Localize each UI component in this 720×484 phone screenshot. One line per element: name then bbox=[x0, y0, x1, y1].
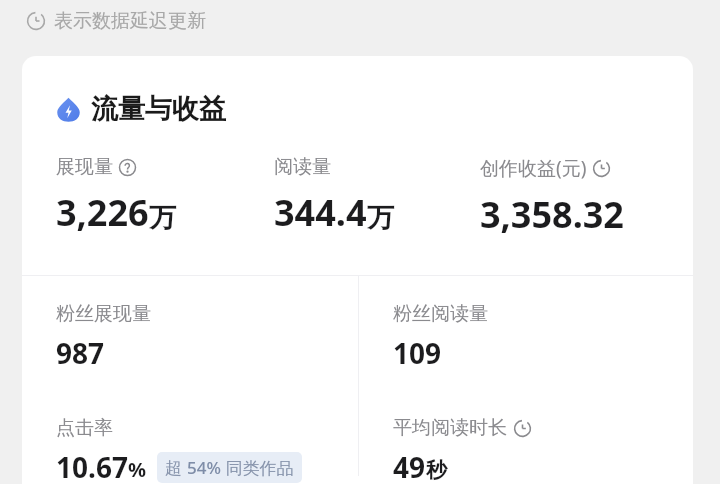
staticText: 987 bbox=[56, 334, 105, 372]
button[interactable]: 创作收益(元) bbox=[480, 155, 679, 239]
staticText: 展现量 bbox=[56, 155, 113, 179]
staticText: 表示数据延迟更新 bbox=[54, 9, 206, 33]
staticText: 万 bbox=[149, 201, 176, 235]
button[interactable]: 粉丝阅读量 bbox=[359, 276, 693, 484]
staticText: 54% bbox=[187, 456, 221, 479]
staticText: 平均阅读时长 bbox=[393, 416, 507, 440]
staticText: 49 bbox=[393, 448, 426, 484]
staticText: 3,226 bbox=[56, 188, 149, 237]
staticText: 同类作品 bbox=[221, 456, 294, 479]
staticText: 粉丝阅读量 bbox=[393, 302, 488, 326]
staticText: 万 bbox=[367, 201, 394, 235]
staticText: % bbox=[128, 456, 147, 483]
staticText: 点击率 bbox=[56, 416, 113, 440]
staticText: 阅读量 bbox=[274, 155, 331, 179]
staticText: 创作收益(元) bbox=[480, 155, 587, 181]
button[interactable]: 阅读量 bbox=[274, 155, 480, 237]
staticText: 秒 bbox=[426, 457, 447, 483]
button[interactable]: 粉丝展现量 bbox=[22, 276, 358, 484]
staticText: 10.67 bbox=[56, 448, 128, 484]
staticText: 3,358.32 bbox=[480, 190, 624, 239]
staticText: 粉丝展现量 bbox=[56, 302, 151, 326]
staticText: 109 bbox=[393, 334, 442, 372]
staticText: 超 bbox=[165, 456, 187, 479]
staticText: 流量与收益 bbox=[91, 92, 226, 126]
button[interactable]: 流量与收益 bbox=[56, 92, 226, 126]
button[interactable]: 超 bbox=[157, 452, 302, 483]
staticText: 344.4 bbox=[274, 188, 367, 237]
button[interactable]: 展现量 bbox=[56, 155, 274, 237]
